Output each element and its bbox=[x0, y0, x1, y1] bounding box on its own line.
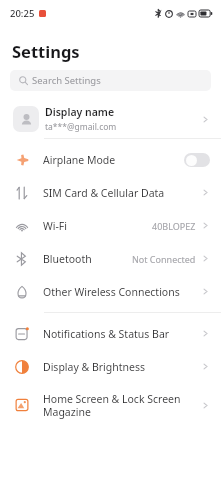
button[interactable]: Notifications & Status Bar bbox=[0, 317, 221, 350]
staticText: Not Connected bbox=[132, 253, 196, 265]
staticText: Display name bbox=[45, 105, 115, 119]
staticText: 40BLOPEZ bbox=[152, 220, 196, 232]
button[interactable]: Bluetooth bbox=[0, 242, 221, 275]
button[interactable]: Home Screen & Lock Screen Magazine bbox=[0, 383, 221, 427]
staticText: 20:25 bbox=[10, 7, 35, 20]
staticText: Wi-Fi bbox=[43, 219, 68, 233]
button[interactable]: Airplane mode toggle bbox=[184, 153, 210, 167]
staticText: Airplane Mode bbox=[43, 153, 116, 167]
staticText: Other Wireless Connections bbox=[43, 285, 180, 299]
button[interactable]: Display name bbox=[0, 100, 221, 138]
button[interactable]: Display & Brightness bbox=[0, 350, 221, 383]
staticText: ta***@gmail.com bbox=[45, 121, 117, 133]
staticText: Display & Brightness bbox=[43, 360, 146, 374]
button[interactable]: Airplane Mode bbox=[0, 143, 221, 176]
staticText: Settings bbox=[12, 40, 80, 62]
staticText: Bluetooth bbox=[43, 252, 92, 266]
button[interactable]: Search Settings bbox=[10, 70, 211, 91]
staticText: Notifications & Status Bar bbox=[43, 327, 170, 341]
staticText: SIM Card & Cellular Data bbox=[43, 186, 165, 200]
staticText: Home Screen & Lock Screen Magazine bbox=[43, 392, 181, 419]
button[interactable]: Other Wireless Connections bbox=[0, 275, 221, 308]
staticText: Search Settings bbox=[32, 74, 101, 87]
button[interactable]: Wi-Fi bbox=[0, 209, 221, 242]
button[interactable]: SIM Card & Cellular Data bbox=[0, 176, 221, 209]
